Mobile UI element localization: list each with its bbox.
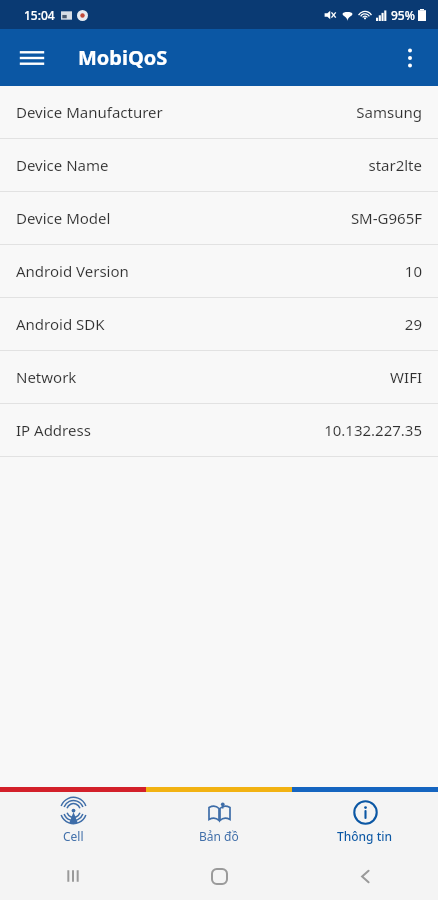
staticText: star2lte bbox=[368, 155, 422, 175]
staticText: Bản đồ bbox=[199, 828, 239, 844]
staticText: Device Model bbox=[16, 208, 111, 228]
button[interactable]: Device Manufacturer bbox=[0, 86, 438, 139]
staticText: Device Name bbox=[16, 155, 109, 175]
button[interactable]: Back bbox=[292, 852, 438, 900]
button[interactable]: Device Name bbox=[0, 139, 438, 192]
staticText: IP Address bbox=[16, 420, 91, 440]
button[interactable]: Recents bbox=[0, 852, 146, 900]
staticText: 10 bbox=[404, 261, 422, 281]
staticText: 95% bbox=[391, 7, 415, 23]
button[interactable]: Device Model bbox=[0, 192, 438, 245]
staticText: Cell bbox=[63, 828, 84, 844]
button[interactable]: Network bbox=[0, 351, 438, 404]
staticText: SM-G965F bbox=[350, 208, 422, 228]
button[interactable]: Bản đồ bbox=[146, 792, 292, 852]
button[interactable]: Cell bbox=[0, 792, 146, 852]
staticText: Android Version bbox=[16, 261, 129, 281]
staticText: Device Manufacturer bbox=[16, 102, 163, 122]
staticText: 10.132.227.35 bbox=[324, 420, 422, 440]
staticText: Android SDK bbox=[16, 314, 105, 334]
button[interactable]: Home bbox=[146, 852, 292, 900]
staticText: 15:04 bbox=[24, 7, 55, 23]
button[interactable]: Android Version bbox=[0, 245, 438, 298]
staticText: Samsung bbox=[356, 102, 422, 122]
staticText: Network bbox=[16, 367, 77, 387]
button[interactable]: More options bbox=[386, 34, 434, 82]
button[interactable]: Open navigation menu bbox=[8, 34, 56, 82]
staticText: 29 bbox=[404, 314, 422, 334]
staticText: WIFI bbox=[390, 367, 422, 387]
button[interactable]: Thông tin bbox=[292, 792, 438, 852]
button[interactable]: Android SDK bbox=[0, 298, 438, 351]
staticText: MobiQoS bbox=[78, 44, 168, 71]
staticText: Thông tin bbox=[337, 828, 393, 844]
button[interactable]: IP Address bbox=[0, 404, 438, 457]
